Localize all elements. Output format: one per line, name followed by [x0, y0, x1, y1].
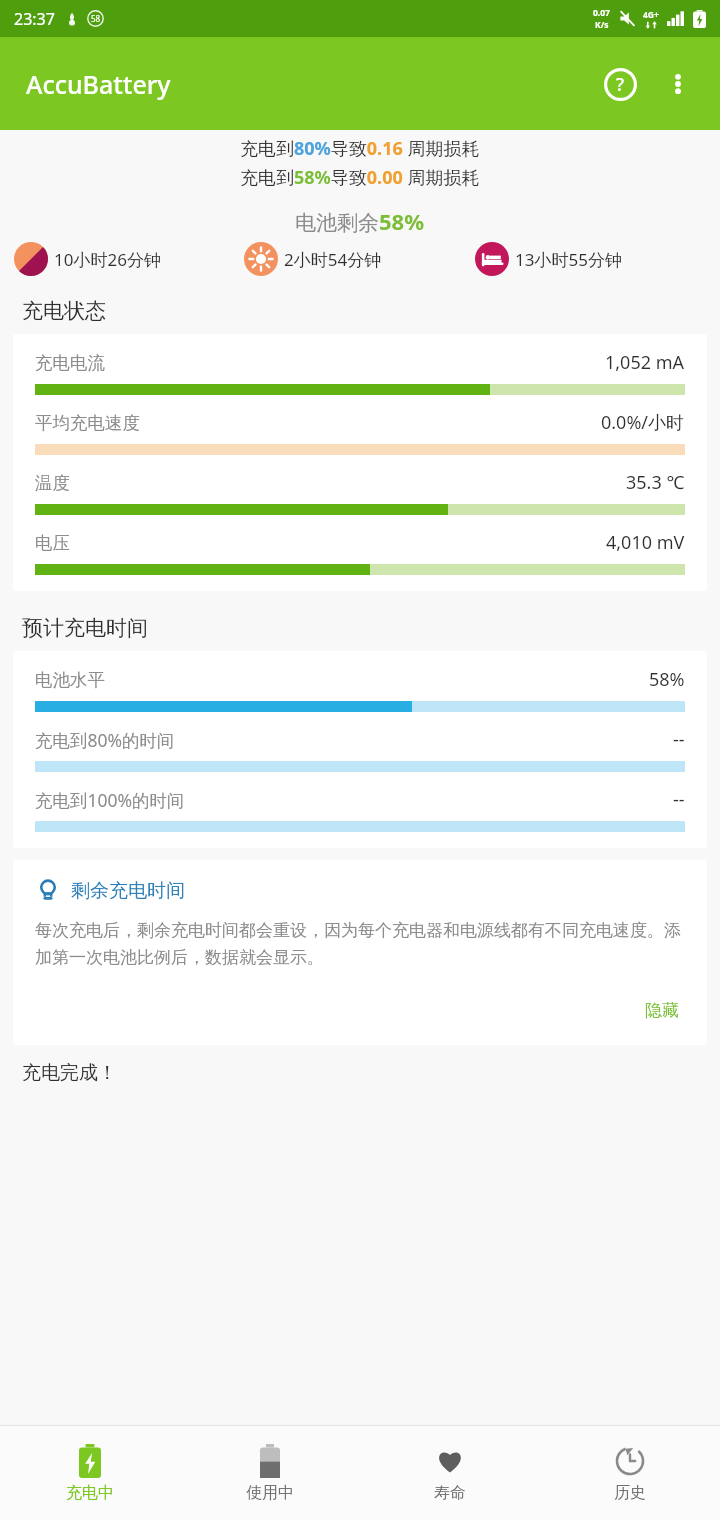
staticText: 58 [91, 13, 101, 24]
staticText: -- [673, 787, 685, 812]
button[interactable]: 充电到80%的时间 [13, 723, 707, 776]
staticText: 13小时55分钟 [515, 248, 622, 271]
staticText: 寿命 [434, 1483, 466, 1503]
staticText: AccuBattery [26, 67, 171, 101]
staticText: 58% [649, 667, 685, 692]
staticText: 2小时54分钟 [284, 248, 382, 271]
button[interactable]: 剩余充电时间 [35, 878, 185, 904]
staticText: 电池水平 [35, 669, 105, 691]
staticText: 充电状态 [22, 298, 106, 324]
button[interactable]: 历史 [540, 1426, 720, 1520]
button[interactable]: 电池水平 [13, 663, 707, 716]
staticText: 充电到80%导致0.16 周期损耗 [240, 136, 480, 161]
button[interactable]: 隐藏 [639, 994, 685, 1027]
button[interactable]: 充电中 [0, 1426, 180, 1520]
staticText: K/s [595, 19, 609, 31]
staticText: 0.07 [593, 7, 610, 19]
staticText: 充电电流 [35, 352, 105, 374]
staticText: 平均充电速度 [35, 412, 140, 434]
staticText: 使用中 [246, 1483, 294, 1503]
button[interactable]: 使用中 [180, 1426, 360, 1520]
button[interactable]: 寿命 [360, 1426, 540, 1520]
button[interactable]: 平均充电速度 [13, 406, 707, 459]
staticText: 充电中 [66, 1483, 114, 1503]
staticText: 1,052 mA [605, 350, 685, 375]
staticText: 10小时26分钟 [54, 248, 161, 271]
staticText: 35.3 ℃ [626, 470, 685, 495]
staticText: 充电完成！ [22, 1061, 117, 1085]
button[interactable]: 温度 [13, 466, 707, 519]
staticText: ? [616, 72, 625, 97]
button[interactable]: 充电电流 [13, 346, 707, 399]
button[interactable]: 充电到100%的时间 [13, 783, 707, 836]
staticText: 电池剩余58% [295, 206, 425, 236]
staticText: 0.0%/小时 [601, 410, 685, 435]
staticText: 4,010 mV [606, 530, 685, 555]
button[interactable]: Help [596, 60, 644, 108]
staticText: 历史 [614, 1483, 646, 1503]
staticText: 剩余充电时间 [71, 879, 185, 903]
staticText: 4G+ [643, 9, 659, 21]
staticText: 充电到100%的时间 [35, 788, 185, 812]
staticText: -- [673, 727, 685, 752]
button[interactable]: More options [654, 60, 702, 108]
button[interactable]: 电压 [13, 526, 707, 579]
staticText: 预计充电时间 [22, 615, 148, 641]
staticText: 电压 [35, 532, 70, 554]
staticText: 隐藏 [645, 1000, 679, 1021]
staticText: 温度 [35, 472, 70, 494]
staticText: 充电到80%的时间 [35, 728, 175, 752]
staticText: 充电到58%导致0.00 周期损耗 [240, 165, 480, 190]
staticText: 23:37 [14, 8, 55, 30]
staticText: 每次充电后，剩余充电时间都会重设，因为每个充电器和电源线都有不同充电速度。添加第… [35, 920, 685, 968]
